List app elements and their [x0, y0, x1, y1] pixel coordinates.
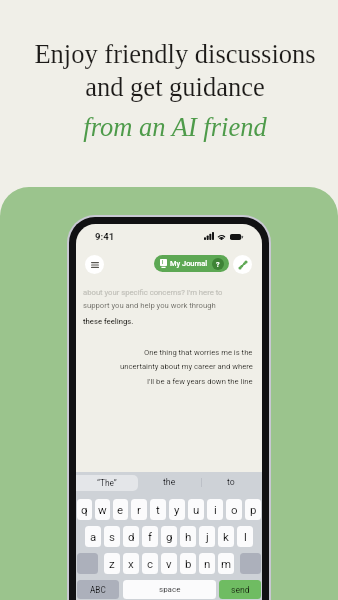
staticText: space	[159, 585, 181, 594]
staticText: to	[227, 477, 235, 487]
button[interactable]: the	[138, 472, 200, 491]
button[interactable]: b	[180, 553, 196, 574]
staticText: ABC	[90, 585, 106, 595]
staticText: ?	[216, 260, 220, 268]
button[interactable]: My Journal	[154, 255, 229, 272]
staticText: u	[193, 503, 200, 516]
staticText: q	[81, 503, 88, 516]
button[interactable]: e	[113, 499, 128, 520]
staticText: “The”	[97, 478, 117, 488]
button[interactable]: Menu	[85, 255, 104, 274]
button[interactable]: y	[169, 499, 185, 520]
staticText: e	[117, 503, 124, 516]
button[interactable]: p	[245, 499, 261, 520]
staticText: l	[244, 530, 247, 543]
staticText: r	[137, 503, 141, 516]
button[interactable]: n	[199, 553, 215, 574]
staticText: x	[128, 557, 134, 570]
button[interactable]: k	[218, 526, 234, 547]
button[interactable]: m	[218, 553, 234, 574]
button[interactable]: o	[226, 499, 242, 520]
button[interactable]: v	[161, 553, 177, 574]
button[interactable]: h	[180, 526, 196, 547]
button[interactable]: send	[219, 580, 261, 599]
staticText: a	[90, 530, 97, 543]
staticText: h	[185, 530, 192, 543]
button[interactable]: q	[77, 499, 92, 520]
staticText: m	[221, 557, 232, 570]
staticText: y	[174, 503, 180, 516]
button[interactable]: space	[123, 580, 216, 599]
button[interactable]: j	[199, 526, 215, 547]
button[interactable]: r	[131, 499, 147, 520]
staticText: o	[231, 503, 238, 516]
staticText: and get guidance	[6, 72, 338, 101]
staticText: j	[206, 530, 209, 543]
button[interactable]: l	[237, 526, 253, 547]
staticText: s	[109, 530, 115, 543]
staticText: Enjoy friendly discussions	[6, 39, 338, 68]
staticText: t	[156, 503, 160, 516]
button[interactable]: f	[142, 526, 158, 547]
staticText: g	[166, 530, 173, 543]
button[interactable]: i	[207, 499, 223, 520]
staticText: i	[214, 503, 217, 516]
staticText: p	[250, 503, 257, 516]
button[interactable]: s	[104, 526, 120, 547]
button[interactable]: u	[188, 499, 204, 520]
staticText: these feelings.	[83, 317, 134, 326]
button[interactable]: ABC	[77, 580, 119, 599]
button[interactable]: z	[104, 553, 120, 574]
button[interactable]: d	[123, 526, 139, 547]
staticText: b	[185, 557, 192, 570]
button[interactable]: x	[123, 553, 139, 574]
button[interactable]: “The”	[76, 475, 138, 491]
staticText: I'll be a few years down the line	[147, 377, 253, 386]
staticText: z	[109, 557, 115, 570]
staticText: w	[98, 503, 107, 516]
staticText: c	[147, 557, 154, 570]
button[interactable]: g	[161, 526, 177, 547]
staticText: My Journal	[170, 259, 208, 268]
button[interactable]: New entry	[233, 255, 252, 274]
button[interactable]: w	[95, 499, 110, 520]
staticText: uncertainty about my career and where	[120, 362, 253, 371]
staticText: v	[166, 557, 172, 570]
staticText: n	[204, 557, 211, 570]
staticText: 9:41	[95, 231, 115, 242]
button[interactable]: t	[150, 499, 166, 520]
staticText: from an AI friend	[6, 112, 338, 141]
staticText: One thing that worries me is the	[144, 348, 253, 357]
button[interactable]: to	[200, 472, 262, 491]
staticText: k	[223, 530, 229, 543]
staticText: f	[148, 530, 152, 543]
button[interactable]: c	[142, 553, 158, 574]
button[interactable]: Backspace	[240, 553, 261, 574]
button[interactable]: Shift	[77, 553, 98, 574]
button[interactable]: a	[85, 526, 101, 547]
staticText: about your specific concerns? I'm here t…	[83, 288, 223, 297]
staticText: d	[128, 530, 135, 543]
staticText: the	[163, 477, 176, 487]
staticText: support you and help you work through	[83, 301, 216, 310]
staticText: send	[231, 585, 250, 595]
